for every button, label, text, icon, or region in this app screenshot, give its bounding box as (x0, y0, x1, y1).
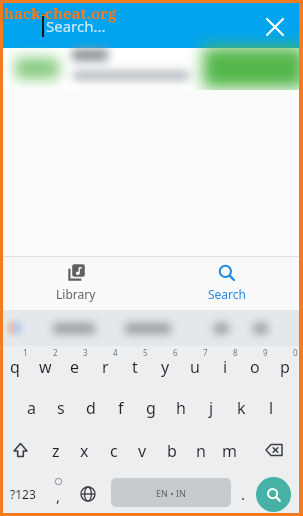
button[interactable]: Library (0, 256, 151, 310)
button[interactable]: , (46, 472, 70, 516)
staticText: t (132, 356, 138, 378)
staticText: w (39, 356, 52, 378)
button[interactable]: m (215, 429, 244, 472)
staticText: y (161, 356, 170, 378)
staticText: h (176, 397, 186, 419)
staticText: g (146, 397, 156, 419)
staticText: 0 (293, 347, 298, 358)
button[interactable]: q (0, 346, 30, 387)
button[interactable]: j (196, 387, 226, 429)
button[interactable]: t (120, 346, 150, 387)
button[interactable]: z (41, 429, 70, 472)
staticText: x (80, 440, 89, 462)
button[interactable]: ?123 (0, 472, 46, 516)
staticText: f (118, 397, 124, 419)
staticText: k (237, 397, 246, 419)
button[interactable] (72, 472, 104, 516)
staticText: i (223, 356, 228, 378)
button[interactable]: s (46, 387, 76, 429)
staticText: ?123 (10, 486, 36, 502)
button[interactable]: y (150, 346, 180, 387)
staticText: 2 (53, 347, 58, 358)
staticText: 9 (263, 347, 268, 358)
button[interactable]: r (90, 346, 120, 387)
staticText: o (250, 356, 260, 378)
button[interactable] (206, 50, 303, 88)
staticText: b (167, 440, 177, 462)
staticText: m (222, 440, 237, 462)
button[interactable]: EN • IN (111, 478, 231, 507)
staticText: Search... (46, 16, 106, 36)
staticText: 4 (113, 347, 118, 358)
staticText: a (27, 397, 36, 419)
staticText: 6 (173, 347, 178, 358)
button[interactable]: p (270, 346, 300, 387)
staticText: r (102, 356, 109, 378)
button[interactable]: l (256, 387, 286, 429)
staticText: , (56, 486, 61, 506)
staticText: EN • IN (156, 487, 186, 499)
button[interactable] (259, 11, 291, 43)
staticText: 5 (143, 347, 148, 358)
staticText: l (269, 397, 274, 419)
staticText: hack-cheat.org (4, 3, 117, 23)
staticText: 3 (83, 347, 88, 358)
button[interactable] (0, 429, 41, 472)
button[interactable]: c (99, 429, 128, 472)
button[interactable]: f (106, 387, 136, 429)
staticText: s (57, 397, 65, 419)
button[interactable]: h (166, 387, 196, 429)
button[interactable]: . (232, 472, 254, 516)
button[interactable]: a (16, 387, 46, 429)
button[interactable] (256, 477, 291, 512)
staticText: 8 (233, 347, 238, 358)
staticText: v (138, 440, 147, 462)
staticText: Library (56, 286, 96, 302)
button[interactable]: u (180, 346, 210, 387)
button[interactable] (0, 310, 303, 346)
button[interactable] (244, 429, 303, 472)
staticText: 7 (203, 347, 208, 358)
staticText: p (280, 356, 290, 378)
button[interactable]: Search (151, 256, 303, 310)
button[interactable]: n (186, 429, 215, 472)
button[interactable]: v (128, 429, 157, 472)
button[interactable]: k (226, 387, 256, 429)
staticText: z (52, 440, 60, 462)
button[interactable]: e (60, 346, 90, 387)
button[interactable]: g (136, 387, 166, 429)
button[interactable]: d (76, 387, 106, 429)
staticText: u (190, 356, 200, 378)
staticText: e (70, 356, 80, 378)
staticText: d (86, 397, 96, 419)
staticText: q (10, 356, 20, 378)
staticText: j (209, 397, 214, 419)
staticText: c (110, 440, 118, 462)
staticText: Search (208, 286, 246, 302)
button[interactable]: w (30, 346, 60, 387)
staticText: . (241, 484, 246, 504)
button[interactable]: i (210, 346, 240, 387)
button[interactable]: o (240, 346, 270, 387)
button[interactable]: x (70, 429, 99, 472)
button[interactable]: b (157, 429, 186, 472)
staticText: n (196, 440, 206, 462)
staticText: 1 (23, 347, 28, 358)
